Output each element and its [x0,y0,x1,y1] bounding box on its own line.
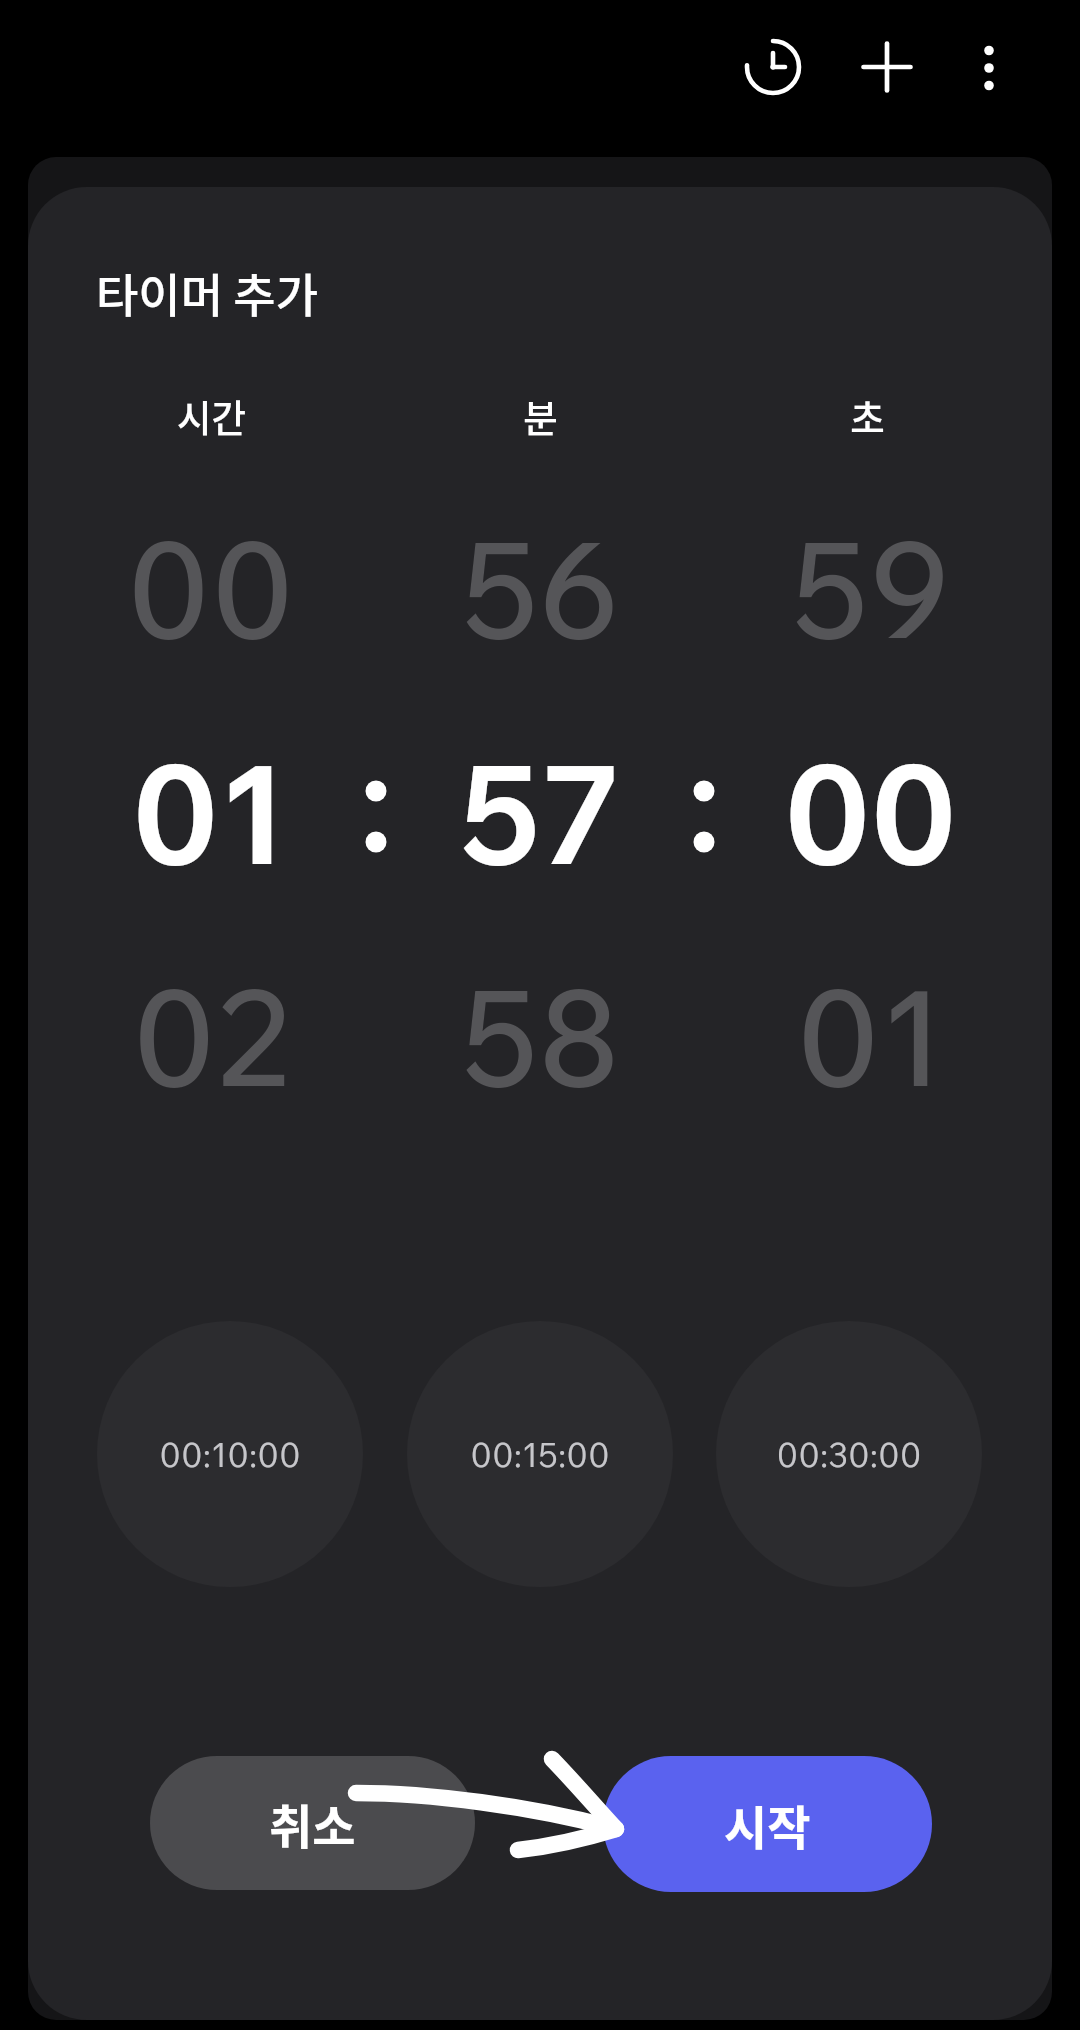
staticText: 시작 [724,1790,811,1858]
button[interactable]: 01 [720,924,1020,1148]
button[interactable]: Timer history [725,19,821,115]
button[interactable]: 00 [60,476,360,700]
button[interactable]: 57 [390,700,690,924]
staticText: 01 [796,953,945,1119]
button[interactable]: 00:15:00 [407,1321,673,1587]
button[interactable]: 00:10:00 [97,1321,363,1587]
button[interactable]: 59 [720,476,1020,700]
staticText: 00 [784,727,957,898]
button[interactable]: 00 [720,700,1020,924]
button[interactable]: 01 [60,700,360,924]
staticText: 취소 [269,1789,356,1857]
staticText: 00:15:00 [470,1433,610,1476]
staticText: 00 [126,505,295,671]
button[interactable]: 시작 [603,1756,932,1892]
staticText: 분 [523,388,558,442]
button[interactable]: 02 [60,924,360,1148]
staticText: 00:10:00 [159,1433,301,1476]
button[interactable]: Add timer [839,19,935,115]
staticText: 58 [461,953,620,1119]
button[interactable]: 취소 [150,1756,475,1890]
button[interactable]: More options [941,19,1037,115]
staticText: 56 [461,505,620,671]
staticText: 00:30:00 [776,1433,922,1476]
button[interactable]: 00:30:00 [716,1321,982,1587]
staticText: 59 [791,505,950,671]
button[interactable]: 56 [390,476,690,700]
staticText: 57 [459,727,621,898]
staticText: 초 [850,388,885,442]
staticText: 시간 [177,388,246,442]
staticText: 02 [132,953,289,1119]
staticText: 01 [132,727,288,898]
staticText: 타이머 추가 [96,259,318,326]
button[interactable]: 58 [390,924,690,1148]
